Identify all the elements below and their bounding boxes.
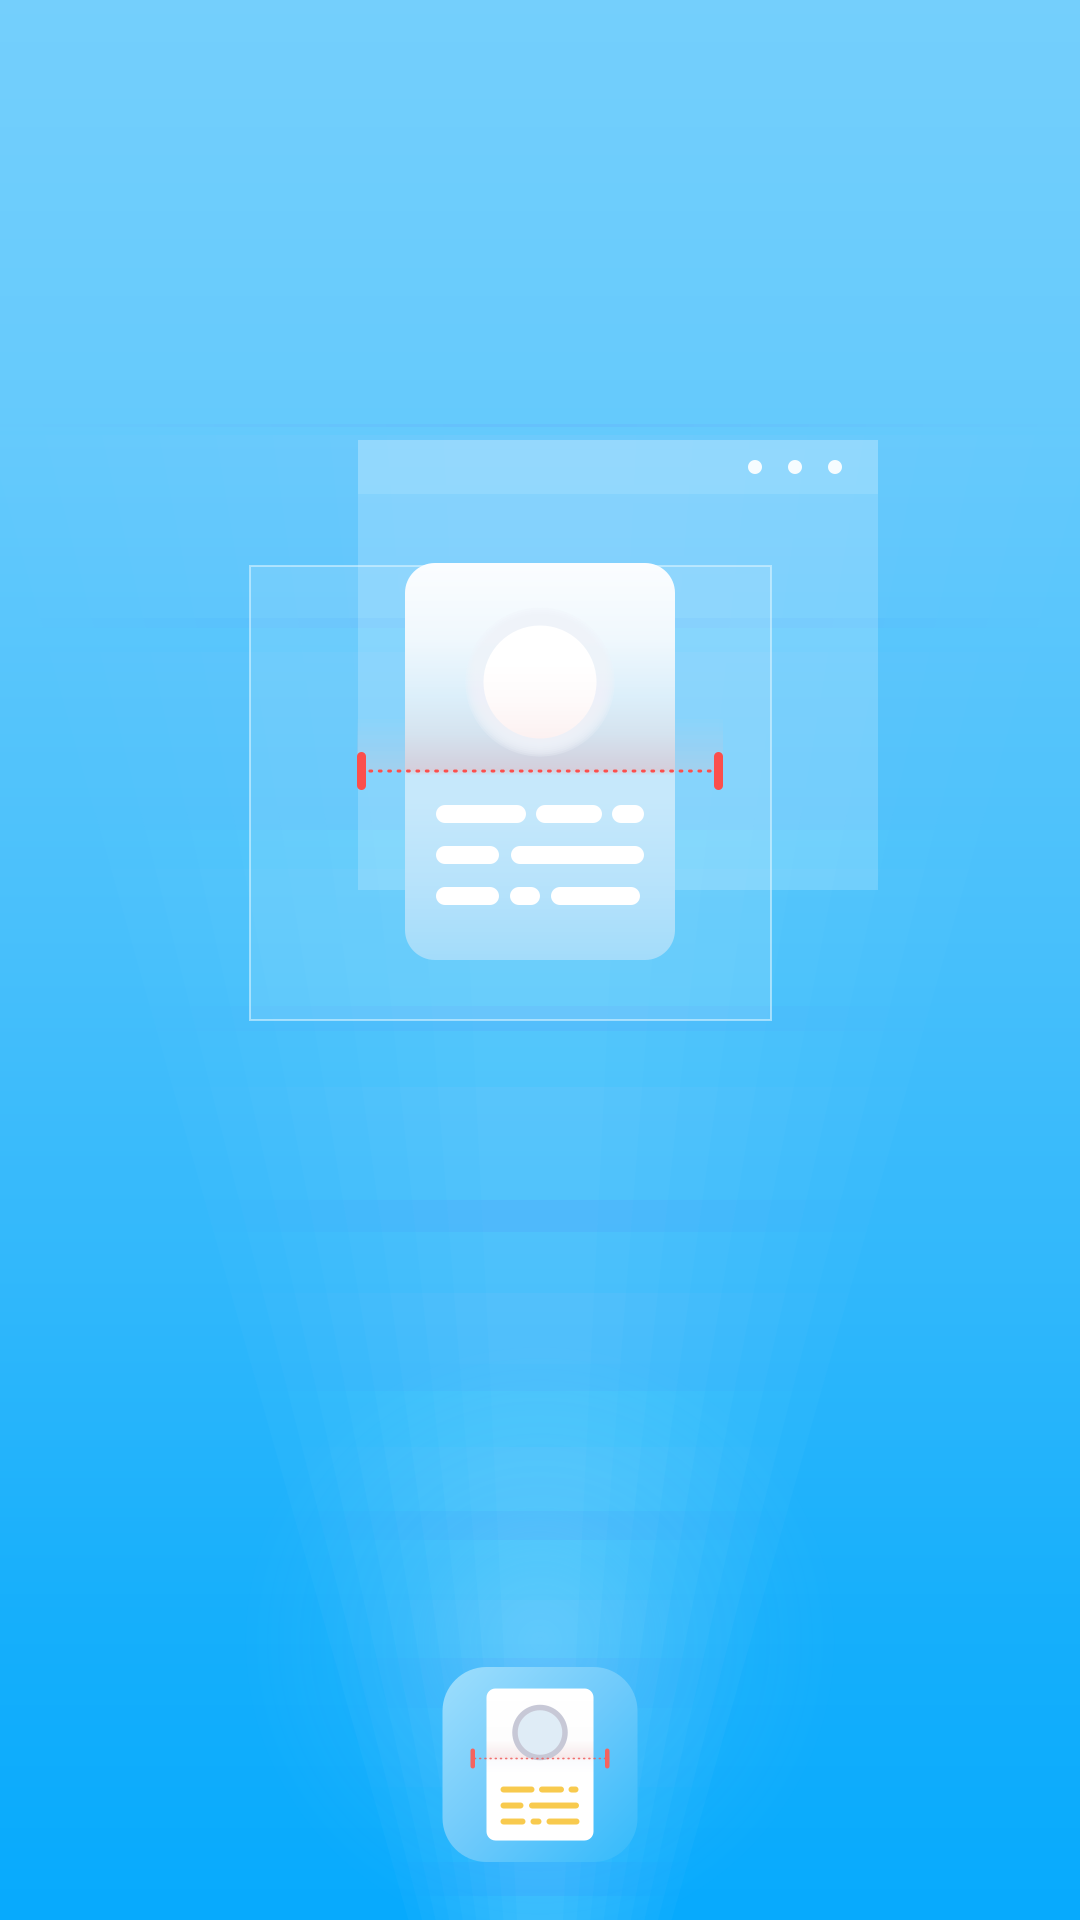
- button[interactable]: Scanner app icon: [442, 1667, 637, 1862]
